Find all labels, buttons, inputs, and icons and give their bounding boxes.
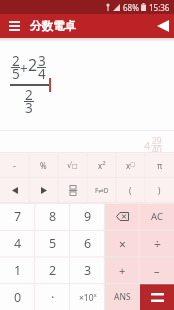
staticText: 6	[84, 235, 92, 252]
button[interactable]	[140, 284, 174, 310]
staticText: +	[119, 263, 126, 278]
button[interactable]	[29, 178, 58, 203]
staticText: 0	[14, 289, 22, 306]
button[interactable]: 5	[35, 230, 70, 257]
staticText: x□	[126, 160, 135, 171]
button[interactable]: ×10x	[70, 284, 105, 310]
staticText: 4	[144, 138, 151, 153]
staticText: 15:36	[149, 2, 170, 13]
staticText: 4	[38, 65, 46, 83]
button[interactable]: -	[0, 152, 29, 178]
staticText: 3	[84, 262, 92, 279]
button[interactable]: AC	[140, 203, 174, 230]
staticText: x2	[98, 159, 106, 171]
staticText: 分数電卓	[30, 19, 76, 33]
button[interactable]: 0	[0, 284, 35, 310]
staticText: 40	[152, 144, 162, 156]
staticText: 2	[12, 52, 20, 70]
staticText: 8	[49, 208, 57, 225]
staticText: ÷	[154, 236, 161, 252]
button[interactable]: +	[105, 257, 140, 284]
button[interactable]: 7	[0, 203, 35, 230]
button[interactable]: √□	[58, 152, 87, 178]
staticText: ×10x	[79, 291, 97, 303]
button[interactable]: 2	[35, 257, 70, 284]
button[interactable]: 6	[70, 230, 105, 257]
staticText: 4	[14, 235, 22, 252]
staticText: 3	[25, 99, 33, 117]
staticText: )	[158, 185, 161, 196]
button[interactable]	[58, 178, 87, 203]
button[interactable]: x2	[87, 152, 116, 178]
staticText: 2	[28, 54, 38, 76]
staticText: 5	[49, 235, 57, 252]
button[interactable]: )	[145, 178, 174, 203]
staticText: +	[20, 60, 28, 78]
staticText: AC	[151, 210, 163, 223]
button[interactable]	[0, 178, 29, 203]
button[interactable]: ÷	[140, 230, 174, 257]
button[interactable]: ×	[105, 230, 140, 257]
button[interactable]: –	[140, 257, 174, 284]
button[interactable]: %	[29, 152, 58, 178]
staticText: (	[129, 185, 132, 196]
staticText: F⇌D	[95, 186, 109, 195]
staticText: ANS	[114, 291, 131, 303]
staticText: ×	[119, 236, 126, 252]
button[interactable]: (	[116, 178, 145, 203]
staticText: 7	[14, 208, 22, 225]
button[interactable]	[105, 203, 140, 230]
button[interactable]: 4	[0, 230, 35, 257]
staticText: 5	[12, 65, 20, 83]
button[interactable]: F⇌D	[87, 178, 116, 203]
button[interactable]	[151, 14, 174, 38]
staticText: 9	[84, 208, 92, 225]
staticText: √□	[67, 161, 78, 170]
staticText: –	[154, 263, 160, 278]
button[interactable]: 9	[70, 203, 105, 230]
button[interactable]	[4, 14, 24, 38]
staticText: -	[13, 159, 16, 171]
staticText: π	[157, 160, 163, 171]
button[interactable]: ANS	[105, 284, 140, 310]
staticText: %	[40, 160, 47, 171]
staticText: 3	[38, 52, 46, 70]
staticText: 2	[25, 86, 33, 104]
staticText: 2	[49, 262, 57, 279]
staticText: ·	[51, 289, 55, 306]
staticText: 68%	[123, 2, 139, 13]
button[interactable]: 3	[70, 257, 105, 284]
button[interactable]: π	[145, 152, 174, 178]
staticText: 29	[152, 135, 162, 147]
staticText: 1	[14, 262, 22, 279]
button[interactable]: ·	[35, 284, 70, 310]
button[interactable]: 8	[35, 203, 70, 230]
button[interactable]: x□	[116, 152, 145, 178]
button[interactable]: 1	[0, 257, 35, 284]
